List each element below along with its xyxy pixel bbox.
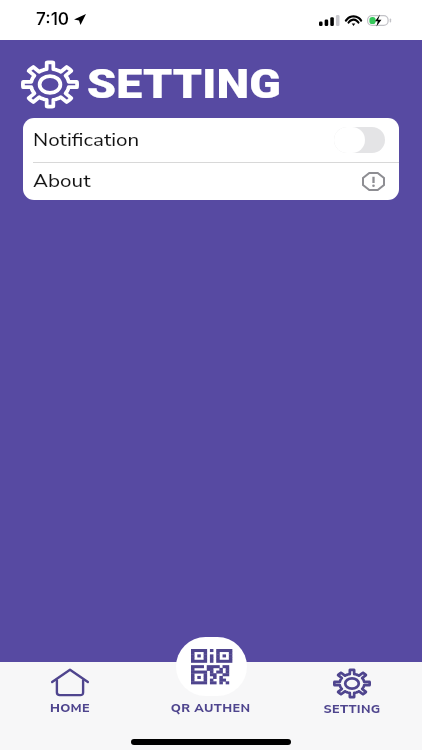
staticText: SETTING: [87, 61, 282, 108]
staticText: HOME: [50, 700, 90, 716]
staticText: SETTING: [323, 701, 381, 717]
staticText: Notification: [33, 128, 140, 153]
button[interactable]: SETTING: [281, 662, 422, 750]
button[interactable]: Notification toggle: [334, 127, 385, 153]
button[interactable]: About: [23, 163, 399, 200]
button[interactable]: HOME: [0, 662, 140, 750]
button[interactable]: QR AUTHEN: [173, 700, 249, 716]
button[interactable]: Notification: [23, 118, 399, 162]
button[interactable]: QR Authen: [176, 637, 247, 696]
staticText: 7:10: [36, 9, 70, 30]
staticText: About: [33, 169, 91, 194]
